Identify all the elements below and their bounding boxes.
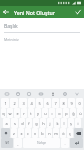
button[interactable]: Pano [23, 90, 35, 98]
button[interactable]: Shift [1, 128, 10, 138]
staticText: 0 [78, 101, 81, 106]
button[interactable]: 7 [52, 98, 59, 108]
button[interactable]: Sil [74, 128, 83, 138]
staticText: s [14, 121, 16, 126]
button[interactable]: x [18, 128, 24, 138]
button[interactable]: Sesle yaz [47, 90, 59, 98]
staticText: r [23, 111, 25, 116]
button[interactable]: g [33, 118, 39, 128]
button[interactable]: m [53, 128, 59, 138]
button[interactable]: b [39, 128, 45, 138]
button[interactable]: w [7, 108, 13, 118]
button[interactable]: u [42, 108, 48, 118]
staticText: t [30, 111, 32, 116]
button[interactable]: z [11, 128, 17, 138]
staticText: d [21, 121, 24, 126]
staticText: n [48, 131, 51, 136]
button[interactable]: s [11, 118, 18, 128]
staticText: 9 [70, 101, 73, 106]
staticText: w [8, 111, 12, 116]
button[interactable]: n [46, 128, 52, 138]
button[interactable]: Ayarlar [59, 90, 71, 98]
staticText: b [41, 131, 44, 136]
button[interactable]: y [35, 108, 41, 118]
button[interactable]: Klavye düzeni [35, 90, 47, 98]
button[interactable]: ı [49, 108, 55, 118]
button[interactable]: 3 [19, 98, 27, 108]
button[interactable]: 2 [10, 98, 18, 108]
button[interactable]: v [32, 128, 38, 138]
staticText: 6 [46, 101, 49, 106]
button[interactable]: Emoji [12, 90, 23, 98]
staticText: 8 [62, 101, 65, 106]
staticText: y [37, 111, 39, 116]
button[interactable]: a [3, 118, 10, 128]
staticText: x [20, 131, 23, 136]
button[interactable]: 0 [76, 98, 83, 108]
staticText: , [17, 141, 19, 146]
staticText: p [65, 111, 68, 116]
button[interactable]: ç [67, 128, 73, 138]
staticText: l [63, 121, 65, 126]
button[interactable]: p [63, 108, 69, 118]
button[interactable]: Başlık [4, 23, 80, 33]
button[interactable]: r [21, 108, 27, 118]
button[interactable]: Türkçe [23, 138, 60, 148]
staticText: 3 [22, 101, 25, 106]
staticText: g [35, 121, 38, 126]
button[interactable]: e [14, 108, 20, 118]
button[interactable]: h [40, 118, 46, 128]
staticText: Başlık [4, 23, 18, 30]
staticText: ğ [72, 111, 75, 116]
staticText: a [5, 121, 8, 126]
staticText: 4 [30, 101, 33, 106]
staticText: . [64, 141, 66, 146]
button[interactable]: c [25, 128, 31, 138]
staticText: e [16, 111, 19, 116]
staticText: o [58, 111, 61, 116]
button[interactable]: Klavyeyi kapat [71, 90, 83, 98]
button[interactable]: ö [60, 128, 66, 138]
button[interactable]: ğ [70, 108, 76, 118]
button[interactable]: 9 [68, 98, 75, 108]
staticText: z [13, 131, 15, 136]
staticText: i [77, 121, 79, 126]
button[interactable]: GIF [1, 90, 12, 98]
button[interactable]: !#1 [1, 138, 13, 148]
staticText: j [49, 121, 51, 126]
button[interactable]: j [47, 118, 53, 128]
button[interactable]: f [26, 118, 32, 128]
button[interactable]: 1 [1, 98, 9, 108]
button[interactable]: t [28, 108, 34, 118]
button[interactable]: i [75, 118, 81, 128]
staticText: ş [70, 121, 72, 126]
staticText: h [42, 121, 45, 126]
button[interactable]: q [1, 108, 6, 118]
button[interactable]: 5 [36, 98, 43, 108]
staticText: 1 [4, 101, 7, 106]
button[interactable]: ü [77, 108, 83, 118]
button[interactable]: , [14, 138, 22, 148]
button[interactable]: Enter [70, 138, 83, 148]
button[interactable]: Kaydet [72, 6, 84, 18]
staticText: Türkçe [37, 141, 47, 145]
button[interactable]: ş [68, 118, 74, 128]
staticText: ö [62, 131, 65, 136]
staticText: m [54, 131, 58, 136]
button[interactable]: k [54, 118, 60, 128]
button[interactable]: 8 [60, 98, 67, 108]
button[interactable]: 6 [44, 98, 51, 108]
button[interactable]: Geri [0, 6, 12, 18]
staticText: 5 [38, 101, 41, 106]
staticText: ç [69, 131, 71, 136]
button[interactable]: d [19, 118, 25, 128]
staticText: Yeni Not Oluştur [14, 9, 55, 16]
button[interactable]: o [56, 108, 62, 118]
button[interactable]: l [61, 118, 67, 128]
button[interactable]: Metniniz [4, 37, 80, 42]
button[interactable]: 4 [28, 98, 35, 108]
staticText: ü [79, 111, 82, 116]
staticText: c [27, 131, 29, 136]
staticText: f [28, 121, 30, 126]
